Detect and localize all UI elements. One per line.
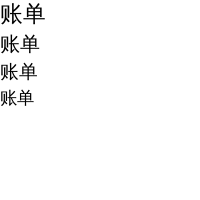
staticText: 账单 <box>0 87 34 109</box>
staticText: 账单 <box>0 0 46 28</box>
staticText: 账单 <box>0 32 40 56</box>
staticText: 账单 <box>0 60 38 83</box>
